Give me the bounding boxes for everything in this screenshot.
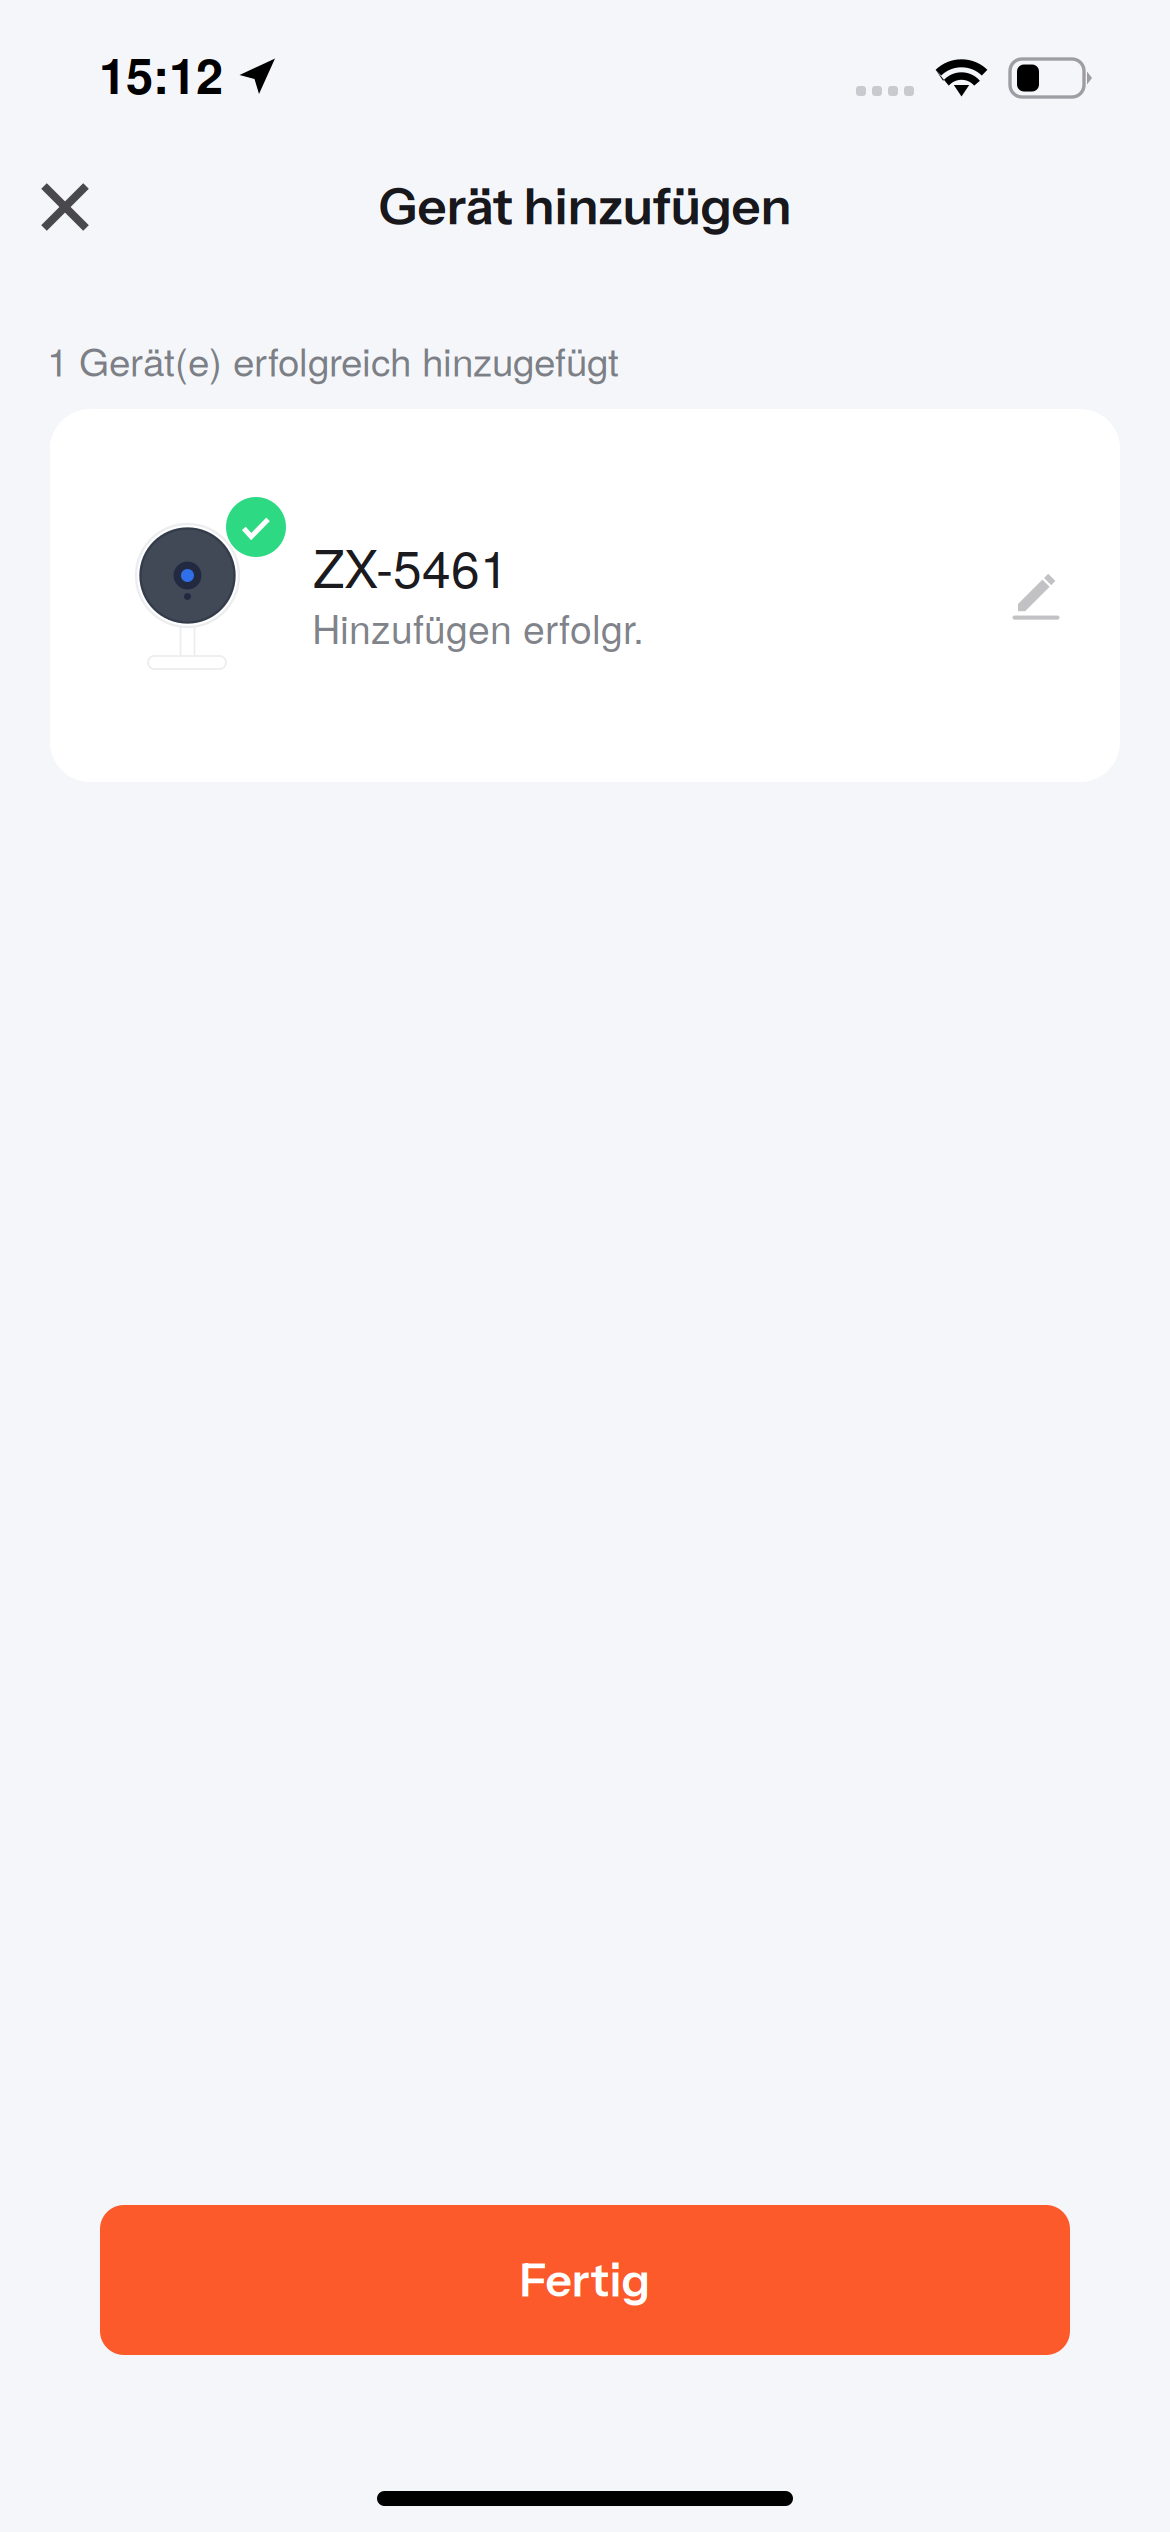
staticText: 1 Gerät(e) erfolgreich hinzugefügt bbox=[47, 332, 619, 387]
staticText: ZX-5461 bbox=[313, 529, 509, 603]
button[interactable]: Gerät umbenennen bbox=[972, 531, 1102, 661]
staticText: Fertig bbox=[519, 2252, 650, 2308]
button[interactable]: Fertig bbox=[100, 2205, 1070, 2355]
staticText: 15:12 bbox=[99, 39, 223, 109]
button[interactable]: Schließen bbox=[8, 152, 118, 262]
staticText: Hinzufügen erfolgr. bbox=[312, 599, 644, 655]
staticText: Gerät hinzufügen bbox=[378, 175, 791, 237]
